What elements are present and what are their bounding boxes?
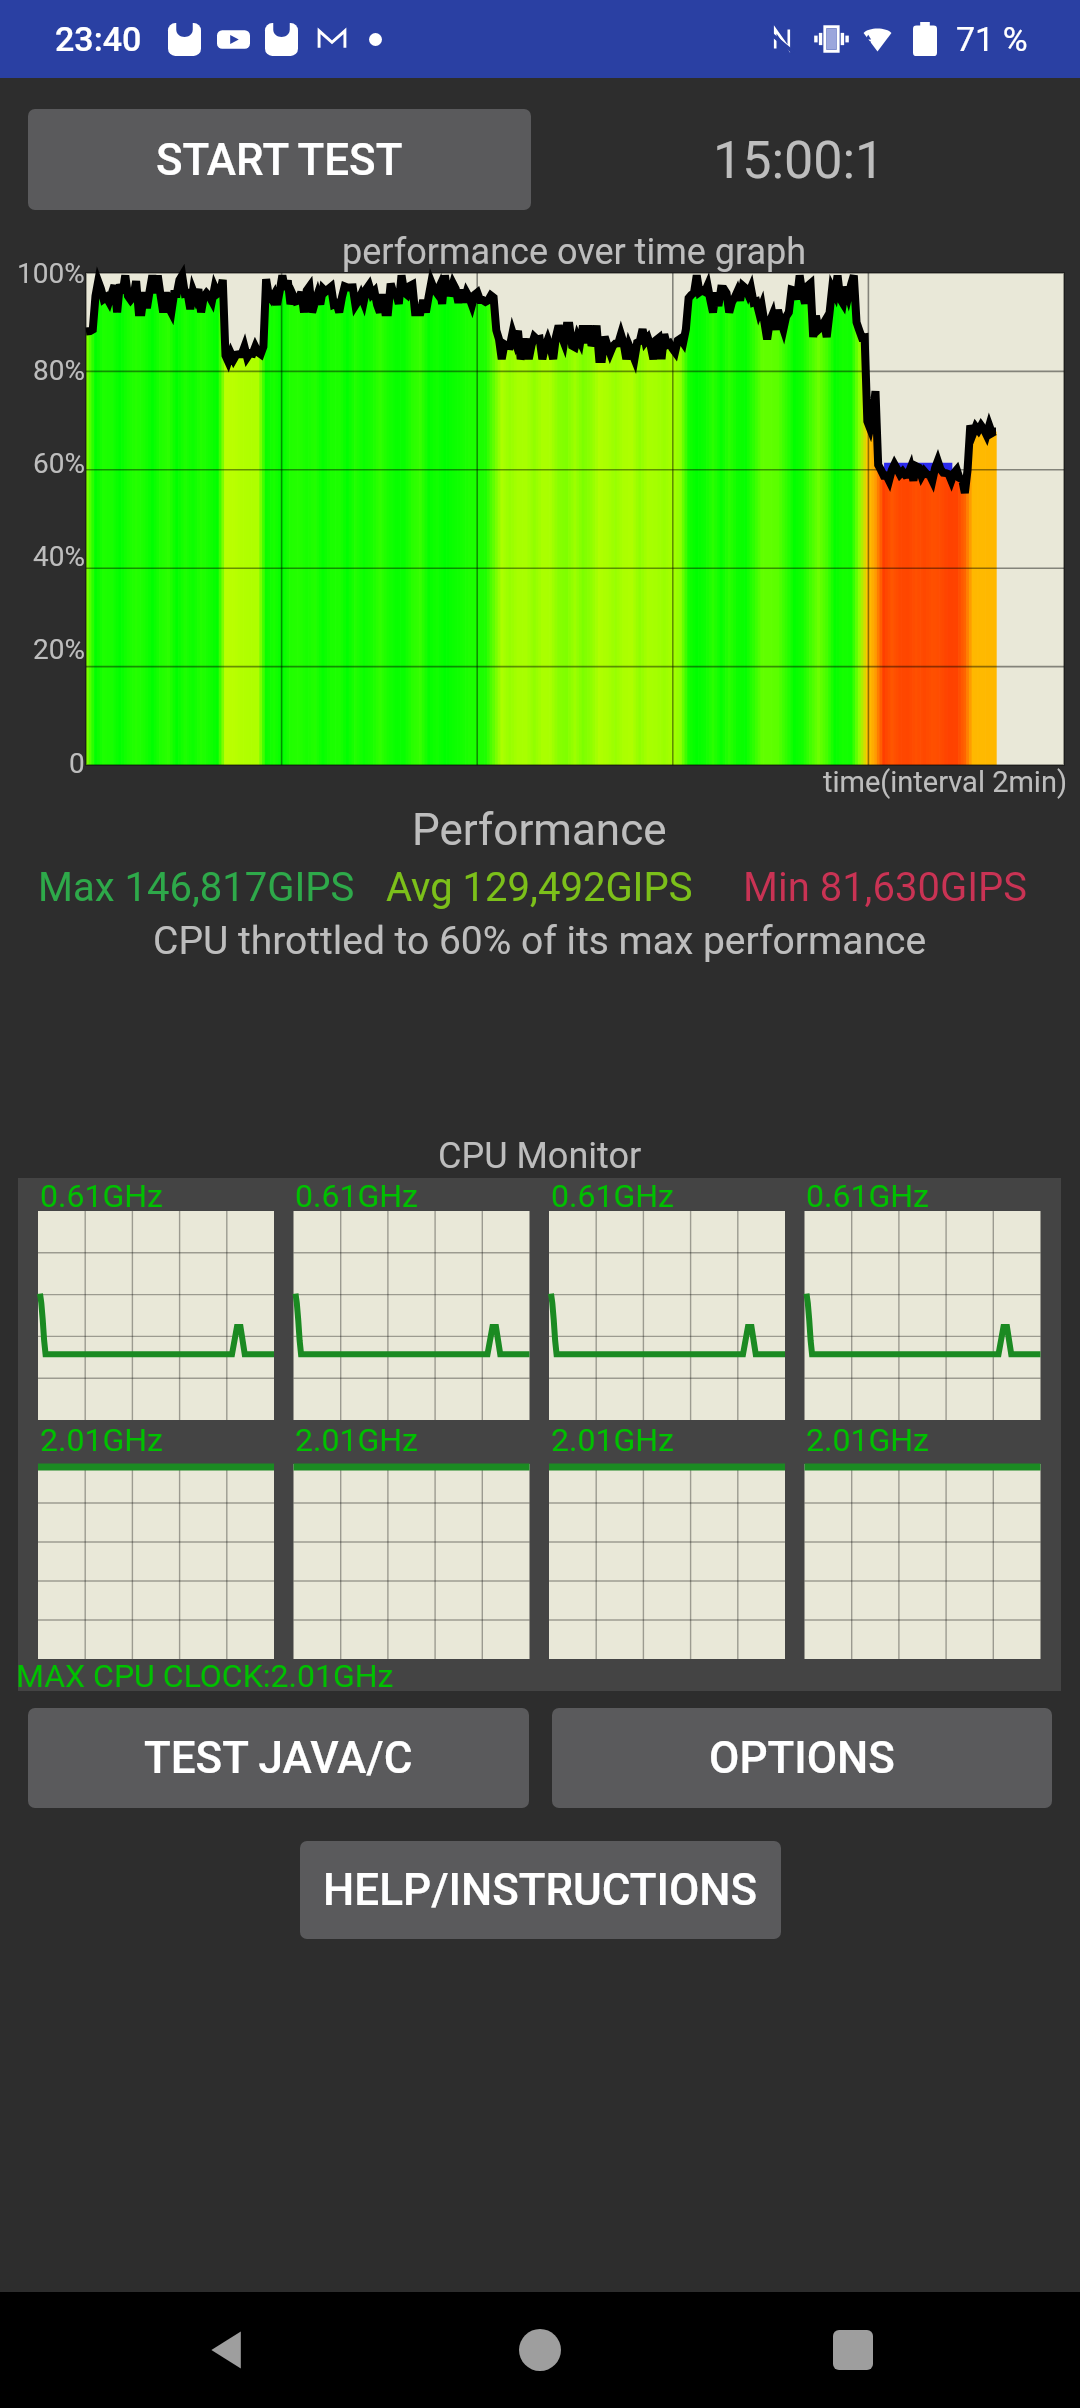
staticText: performance over time graph [342,231,807,273]
staticText: 23:40 [55,19,142,59]
staticText: 60% [33,447,85,480]
staticText: Max 146,817GIPS [38,864,355,911]
staticText: 2.01GHz [40,1421,163,1459]
staticText: 40% [33,540,85,573]
staticText: MAX CPU CLOCK:2.01GHz [16,1657,394,1695]
staticText: TEST JAVA/C [144,1732,413,1784]
staticText: 100% [17,257,85,290]
staticText: Performance [412,804,667,856]
staticText: CPU Monitor [438,1135,642,1177]
staticText: 0.61GHz [295,1177,418,1215]
staticText: Min 81,630GIPS [743,864,1028,911]
staticText: 0.61GHz [40,1177,163,1215]
staticText: 0 [69,747,85,780]
staticText: 15:00:1 [713,130,885,191]
staticText: OPTIONS [709,1732,895,1784]
button[interactable]: Back [182,2305,272,2395]
staticText: HELP/INSTRUCTIONS [323,1864,758,1916]
staticText: 2.01GHz [551,1421,674,1459]
button[interactable]: Home [495,2305,585,2395]
button[interactable]: OPTIONS [552,1708,1052,1808]
button[interactable]: START TEST [28,109,531,210]
button[interactable]: TEST JAVA/C [28,1708,529,1808]
staticText: 2.01GHz [806,1421,929,1459]
staticText: 80% [33,354,85,387]
button[interactable]: Recent apps [808,2305,898,2395]
button[interactable]: HELP/INSTRUCTIONS [300,1841,781,1939]
staticText: 71 % [956,19,1028,59]
staticText: CPU throttled to 60% of its max performa… [153,918,927,964]
staticText: Avg 129,492GIPS [386,864,693,911]
staticText: 0.61GHz [806,1177,929,1215]
staticText: time(interval 2min) [823,765,1068,799]
staticText: 20% [33,633,85,666]
staticText: 2.01GHz [295,1421,418,1459]
staticText: 0.61GHz [551,1177,674,1215]
staticText: START TEST [156,134,403,186]
